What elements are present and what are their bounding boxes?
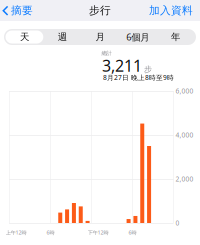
- button[interactable]: 加入資料: [149, 0, 200, 21]
- staticText: 6時: [46, 229, 54, 236]
- button[interactable]: 摘要: [0, 0, 33, 21]
- button[interactable]: 年: [157, 30, 194, 43]
- staticText: 天: [20, 31, 29, 43]
- staticText: 6時: [128, 229, 136, 236]
- staticText: 步: [144, 64, 152, 74]
- staticText: 2,000: [175, 175, 193, 183]
- staticText: 總計: [101, 50, 111, 57]
- staticText: 8月27日 晚上8時至9時: [103, 73, 174, 82]
- staticText: 摘要: [11, 4, 33, 17]
- staticText: 下午12時: [87, 229, 108, 236]
- staticText: 上午12時: [5, 229, 26, 236]
- staticText: 6個月: [126, 31, 149, 43]
- staticText: 4,000: [175, 131, 193, 139]
- staticText: 3,211: [102, 55, 142, 76]
- staticText: 步行: [89, 4, 111, 17]
- staticText: 月: [95, 31, 104, 43]
- button[interactable]: 天: [5, 30, 43, 43]
- staticText: 6,000: [175, 87, 193, 95]
- button[interactable]: 月: [81, 30, 119, 43]
- button[interactable]: 週: [43, 30, 81, 43]
- staticText: 週: [58, 31, 67, 43]
- staticText: 加入資料: [149, 4, 193, 17]
- staticText: 0: [175, 219, 179, 227]
- staticText: 年: [171, 31, 180, 43]
- button[interactable]: 6個月: [119, 30, 157, 43]
